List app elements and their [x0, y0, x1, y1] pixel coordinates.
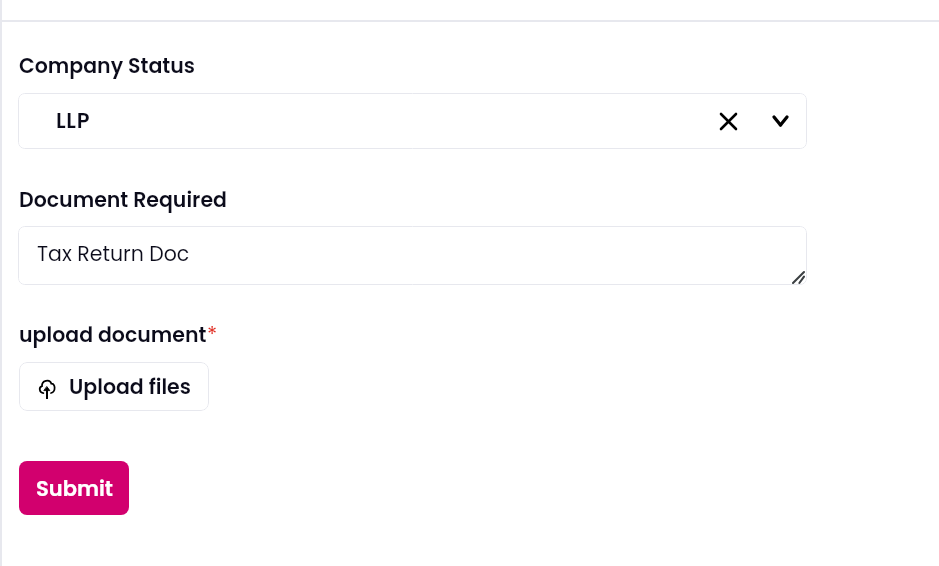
button[interactable]: Show options	[763, 104, 797, 138]
button[interactable]: Tax Return Doc	[18, 226, 807, 285]
staticText: Upload files	[69, 372, 191, 401]
staticText: Submit	[36, 474, 113, 503]
staticText: Company Status	[19, 51, 195, 80]
staticText: Document Required	[19, 185, 227, 214]
staticText: *	[207, 320, 218, 349]
button[interactable]: LLP	[18, 93, 807, 149]
staticText: upload document	[19, 320, 207, 349]
button[interactable]: Upload files	[19, 362, 209, 411]
staticText: LLP	[56, 106, 91, 135]
button[interactable]: Clear selection	[711, 104, 745, 138]
button[interactable]: Submit	[19, 461, 129, 515]
staticText: Tax Return Doc	[37, 239, 190, 268]
